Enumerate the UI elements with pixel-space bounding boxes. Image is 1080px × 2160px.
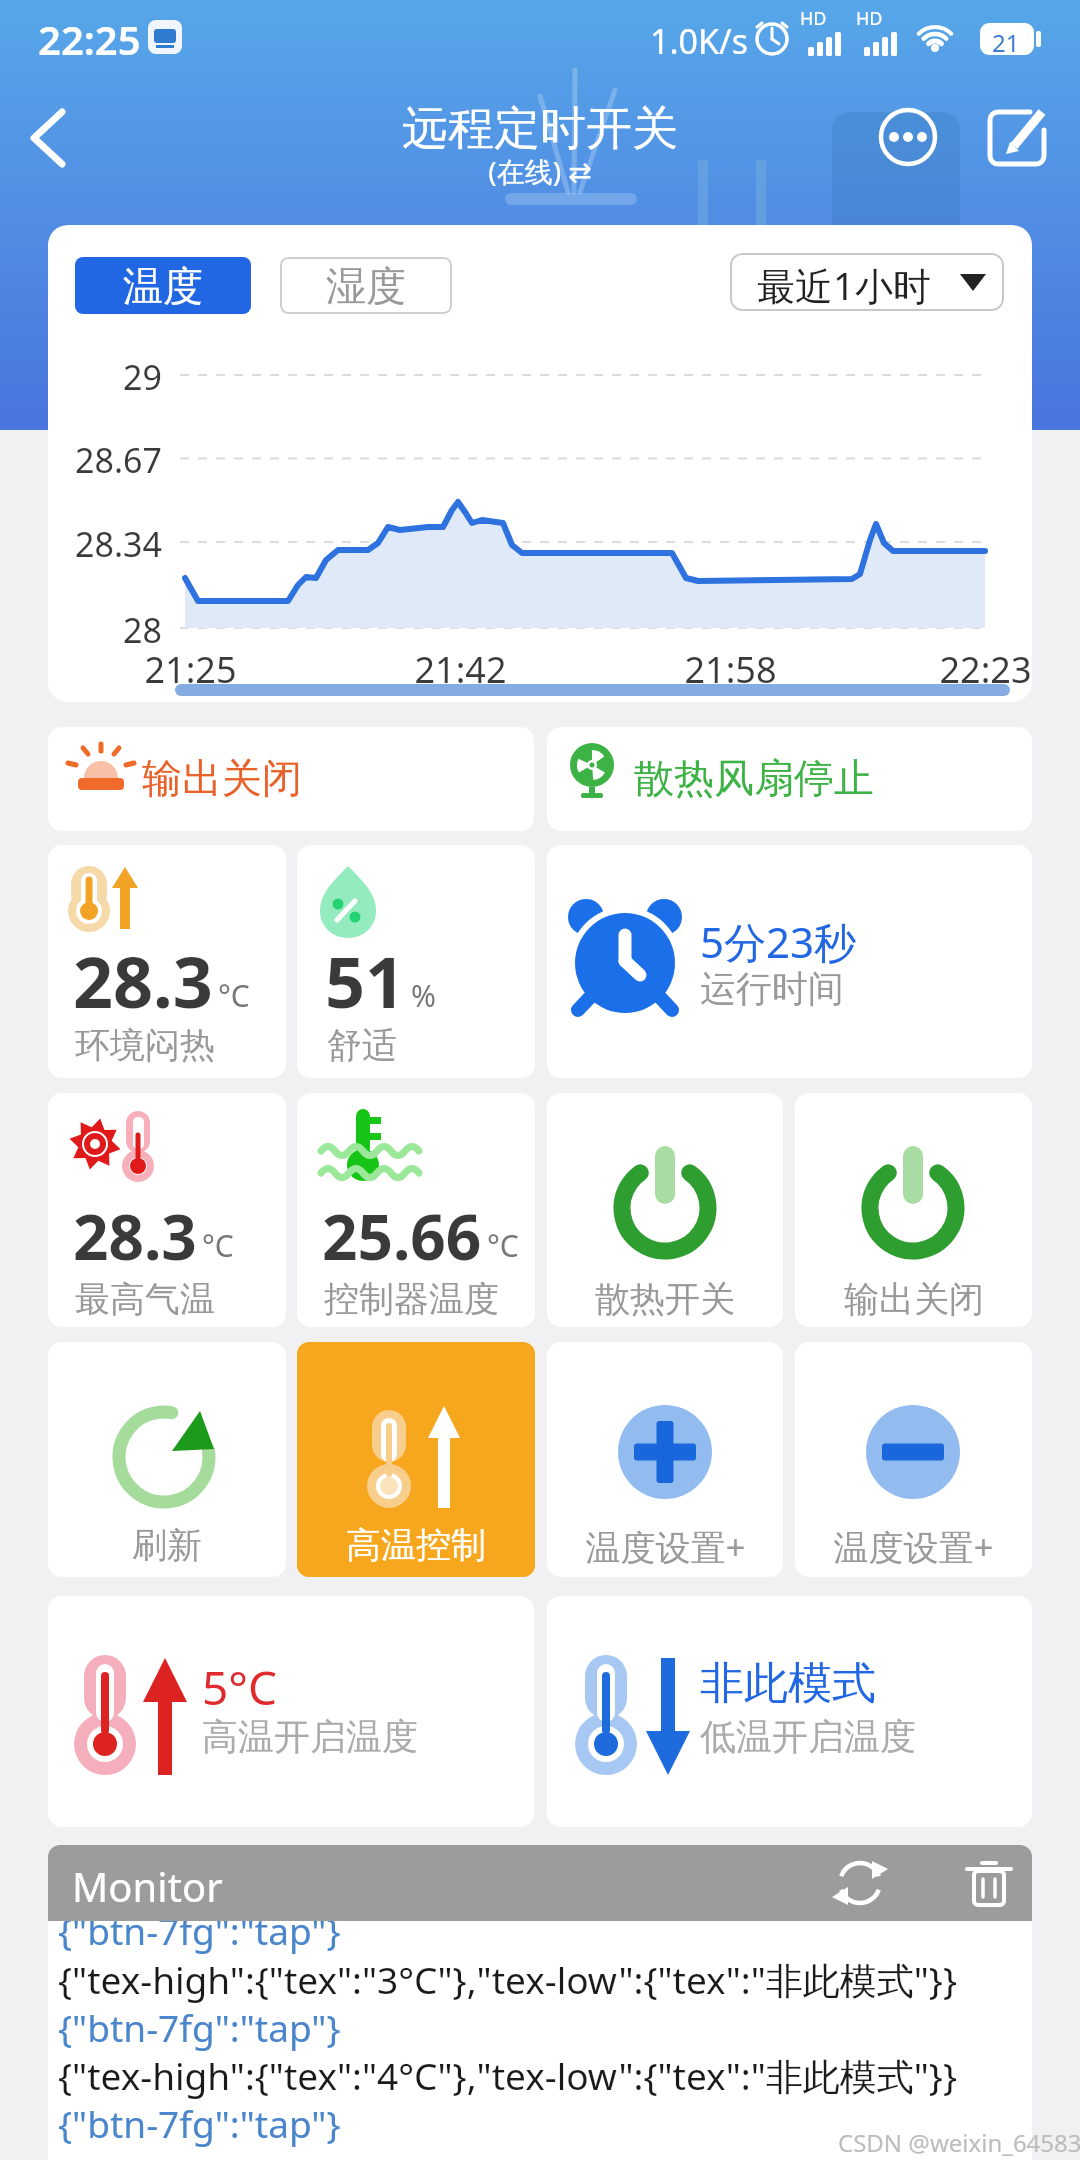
button[interactable]: 温度设置+	[547, 1342, 783, 1577]
staticText: 低温开启温度	[700, 1714, 916, 1759]
staticText: 5°C	[202, 1656, 278, 1719]
staticText: 22:25	[38, 12, 141, 66]
staticText: 高温控制	[346, 1523, 486, 1567]
staticText: 控制器温度	[324, 1277, 499, 1321]
staticText: {"btn-7fg":"tap"}	[58, 2002, 341, 2052]
staticText: 21	[992, 26, 1020, 59]
staticText: 高温开启温度	[202, 1714, 418, 1759]
staticText: 21:42	[414, 645, 507, 694]
staticText: 环境闷热	[75, 1023, 215, 1067]
staticText: 25.66	[322, 1194, 482, 1278]
button[interactable]: 非此模式	[547, 1596, 1032, 1827]
staticText: 温度设置+	[833, 1523, 994, 1571]
button[interactable]: 输出关闭	[795, 1093, 1032, 1327]
button[interactable]: 散热开关	[547, 1093, 783, 1327]
staticText: 输出关闭	[142, 753, 302, 803]
staticText: {"btn-7fg":"tap"}	[58, 2098, 341, 2148]
button[interactable]: 输出关闭	[48, 727, 534, 831]
staticText: {"btn-7fg":"tap"}	[58, 1921, 341, 1955]
staticText: (在线) ⇄	[488, 152, 592, 190]
staticText: 28.3	[73, 933, 213, 1028]
staticText: 最近1小时	[757, 259, 931, 311]
staticText: °C	[487, 1225, 519, 1266]
staticText: 散热风扇停止	[634, 753, 874, 803]
button[interactable]: 25.66	[297, 1093, 535, 1327]
staticText: CSDN @weixin_64583141	[838, 2126, 1080, 2159]
staticText: 28.34	[75, 521, 162, 567]
staticText: 输出关闭	[844, 1277, 984, 1321]
button[interactable]: 高温控制	[297, 1342, 535, 1577]
staticText: 温度	[123, 261, 203, 311]
staticText: 最高气温	[75, 1277, 215, 1321]
staticText: 1.0K/s	[650, 18, 748, 64]
staticText: 28	[123, 607, 162, 653]
staticText: 21:25	[144, 645, 237, 694]
button[interactable]: 5°C	[48, 1596, 534, 1827]
staticText: Monitor	[72, 1859, 223, 1913]
staticText: 21:58	[684, 645, 777, 694]
staticText: 运行时间	[700, 966, 844, 1011]
staticText: 散热开关	[595, 1277, 735, 1321]
staticText: {"tex-high":{"tex":"4°C"},"tex-low":{"te…	[58, 2050, 957, 2101]
staticText: 刷新	[132, 1523, 202, 1567]
staticText: 舒适	[327, 1023, 397, 1067]
button[interactable]: 散热风扇停止	[547, 727, 1032, 831]
staticText: °C	[218, 975, 250, 1016]
staticText: 温度设置+	[585, 1523, 746, 1571]
staticText: HD	[856, 6, 883, 31]
staticText: 22:23	[939, 645, 1032, 694]
button[interactable]: 51	[297, 845, 535, 1078]
button[interactable]: 温度设置+	[795, 1342, 1032, 1577]
staticText: {"tex-high":{"tex":"3°C"},"tex-low":{"te…	[58, 1954, 957, 2005]
button[interactable]: 湿度	[280, 257, 452, 314]
staticText: 5分23秒	[700, 913, 857, 970]
staticText: 非此模式	[700, 1656, 876, 1711]
button[interactable]: 28.3	[48, 845, 286, 1078]
staticText: 湿度	[326, 261, 406, 311]
staticText: 29	[123, 354, 162, 400]
button[interactable]: 5分23秒	[547, 845, 1032, 1078]
staticText: 远程定时开关	[402, 100, 678, 158]
button[interactable]: 最近1小时	[730, 253, 1004, 311]
button[interactable]: 刷新	[48, 1342, 286, 1577]
button[interactable]: 28.3	[48, 1093, 286, 1327]
button[interactable]: 温度	[75, 257, 251, 314]
staticText: °C	[202, 1225, 234, 1266]
staticText: HD	[800, 6, 827, 31]
staticText: %	[411, 975, 436, 1016]
staticText: 51	[325, 933, 406, 1028]
staticText: 28.67	[75, 437, 162, 483]
staticText: 28.3	[73, 1194, 197, 1278]
